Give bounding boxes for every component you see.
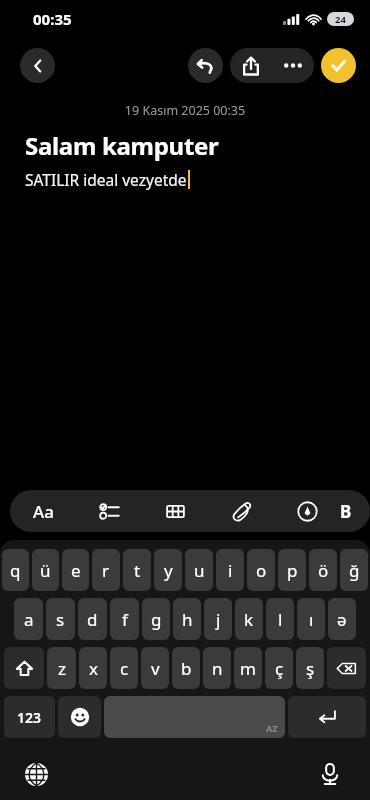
button[interactable]: Numbers [4,696,55,738]
button[interactable]: Backspace [327,647,366,689]
button[interactable]: x [79,647,107,689]
button[interactable]: Table [142,490,208,532]
staticText: m [240,657,256,680]
staticText: ı [309,608,314,631]
button[interactable]: v [141,647,169,689]
staticText: ü [40,559,51,582]
staticText: g [151,608,162,631]
staticText: c [120,657,129,680]
staticText: SATILIR ideal vezyetde [25,169,187,190]
button[interactable]: More options [272,48,314,83]
button[interactable]: Attach file [208,490,274,532]
staticText: b [181,657,192,680]
button[interactable]: Change language [18,756,54,792]
staticText: s [56,608,65,631]
button[interactable]: ş [296,647,324,689]
staticText: ö [318,559,329,582]
button[interactable]: j [204,598,232,640]
staticText: ş [306,657,315,680]
staticText: z [58,657,66,680]
button[interactable]: b [172,647,200,689]
button[interactable]: Bold [340,490,370,532]
button[interactable]: u [185,549,213,591]
button[interactable]: Voice input [312,756,348,792]
staticText: k [244,608,254,631]
button[interactable]: Back [20,48,55,83]
button[interactable]: d [78,598,107,640]
button[interactable]: t [123,549,151,591]
staticText: u [194,559,205,582]
button[interactable]: m [234,647,262,689]
button[interactable]: Text format [10,490,76,532]
staticText: ə [337,608,347,631]
staticText: r [102,559,110,582]
button[interactable]: i [216,549,244,591]
staticText: n [212,657,223,680]
staticText: i [228,559,233,582]
staticText: l [278,608,283,631]
button[interactable]: n [203,647,231,689]
button[interactable]: q [2,549,29,591]
staticText: B [340,500,352,523]
staticText: ç [275,657,284,680]
staticText: 24 [335,13,346,26]
staticText: t [134,559,141,582]
button[interactable]: o [247,549,275,591]
button[interactable]: Emoji [58,696,101,738]
staticText: q [10,559,21,582]
button[interactable]: Shift [4,647,44,689]
button[interactable]: Enter [288,696,366,738]
staticText: 19 Kasım 2025 00:35 [0,102,370,119]
staticText: p [287,559,298,582]
button[interactable]: r [92,549,120,591]
button[interactable]: k [235,598,263,640]
button[interactable]: y [154,549,182,591]
button[interactable]: ğ [340,549,368,591]
button[interactable]: Checklist [76,490,142,532]
staticText: x [89,657,98,680]
button[interactable]: ə [328,598,356,640]
staticText: AZ [266,722,278,734]
button[interactable]: f [110,598,139,640]
staticText: f [122,608,128,631]
button[interactable]: ç [265,647,293,689]
button[interactable]: a [14,598,43,640]
button[interactable]: l [266,598,294,640]
button[interactable]: Space [104,696,285,738]
staticText: Salam kamputer [25,129,219,162]
button[interactable]: s [46,598,75,640]
staticText: j [216,608,221,631]
button[interactable]: ü [32,549,59,591]
staticText: y [164,559,173,582]
button[interactable]: ı [297,598,325,640]
button[interactable]: z [47,647,76,689]
staticText: h [182,608,193,631]
button[interactable]: Undo [188,48,223,83]
staticText: 123 [17,708,42,727]
button[interactable]: p [278,549,306,591]
button[interactable]: Done [321,48,356,83]
staticText: o [256,559,267,582]
staticText: v [151,657,160,680]
staticText: Aa [33,500,54,523]
staticText: 00:35 [33,9,72,29]
button[interactable]: g [142,598,170,640]
button[interactable]: h [173,598,201,640]
staticText: d [87,608,98,631]
button[interactable]: c [110,647,138,689]
button[interactable]: Markup [274,490,340,532]
button[interactable]: ö [309,549,337,591]
button[interactable]: e [62,549,89,591]
button[interactable]: Share [230,48,272,83]
staticText: ğ [349,559,360,582]
staticText: e [71,559,81,582]
staticText: a [24,608,34,631]
